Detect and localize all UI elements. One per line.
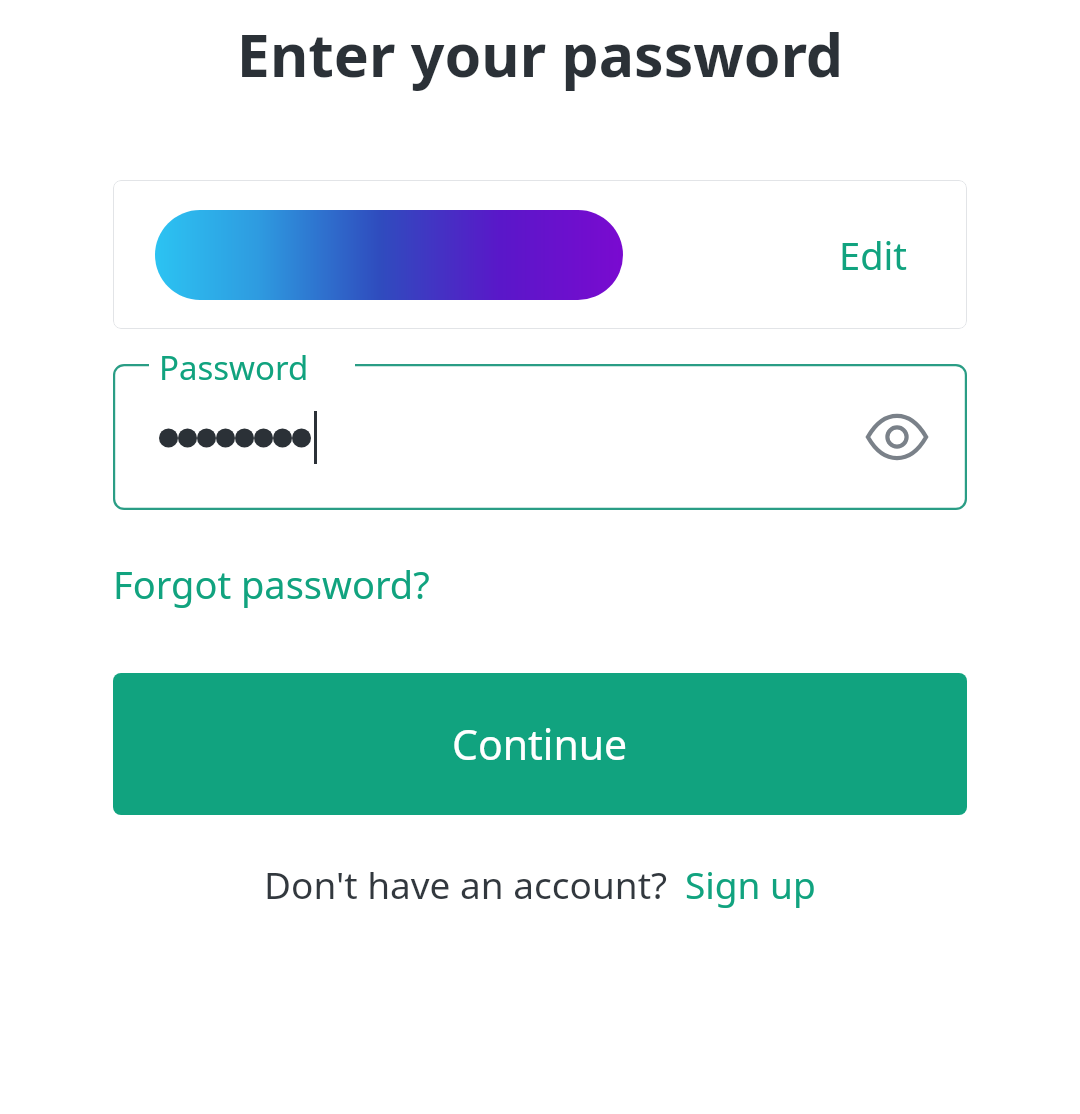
staticText: Forgot password? — [113, 558, 430, 610]
staticText: Enter your password — [100, 14, 980, 94]
button[interactable]: Edit — [113, 180, 967, 329]
staticText: Don't have an account? — [264, 859, 668, 909]
button[interactable]: Sign up — [685, 859, 816, 909]
staticText: Edit — [839, 229, 908, 281]
button[interactable]: Forgot password? — [113, 558, 430, 610]
button[interactable]: Password — [113, 364, 967, 510]
staticText: Password — [159, 345, 309, 390]
staticText: Continue — [452, 716, 628, 772]
button[interactable]: Show password — [861, 401, 933, 473]
staticText: Sign up — [685, 859, 816, 909]
button[interactable]: Continue — [113, 673, 967, 815]
